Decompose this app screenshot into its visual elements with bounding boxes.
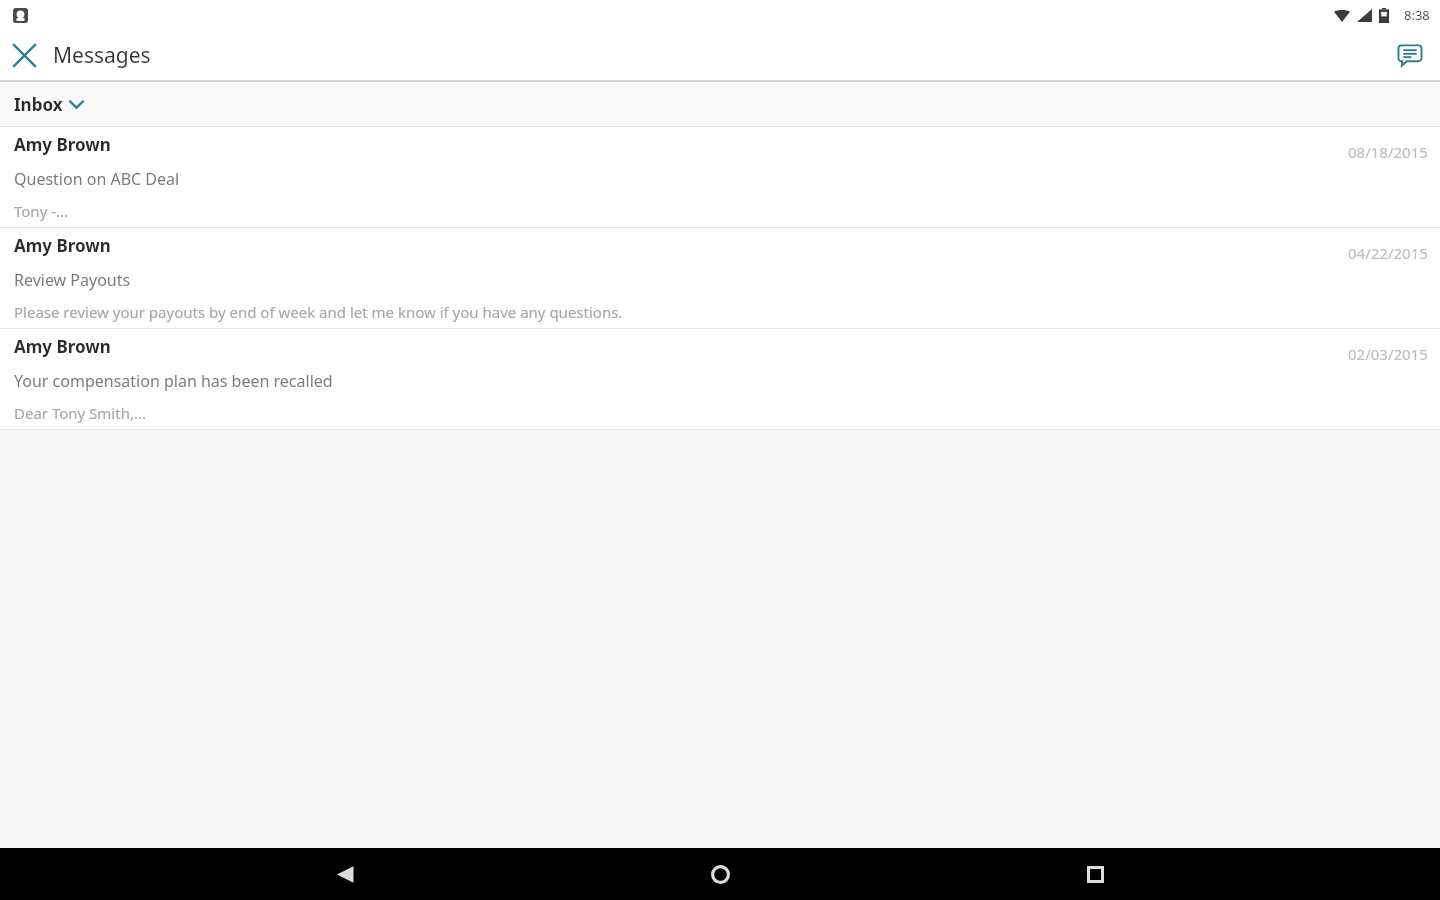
staticText: Messages [53,41,151,70]
staticText: Review Payouts [14,269,131,291]
staticText: Dear Tony Smith,... [14,403,147,423]
button[interactable]: Amy Brown [0,329,1440,429]
staticText: Question on ABC Deal [14,168,180,190]
staticText: 04/22/2015 [1348,243,1428,263]
button[interactable]: Back [315,848,375,900]
staticText: Amy Brown [14,335,111,358]
staticText: 08/18/2015 [1348,142,1428,162]
button[interactable]: Amy Brown [0,228,1440,328]
staticText: Amy Brown [14,234,111,257]
button[interactable]: Home [690,848,750,900]
staticText: 8:38 [1404,6,1430,24]
button[interactable]: Close [0,31,48,79]
button[interactable]: Inbox [0,82,1440,126]
button[interactable]: Amy Brown [0,127,1440,227]
button[interactable]: New message [1386,31,1434,79]
staticText: Your compensation plan has been recalled [14,370,333,392]
staticText: Amy Brown [14,133,111,156]
button[interactable]: Recents [1065,848,1125,900]
staticText: Inbox [14,93,63,116]
staticText: 02/03/2015 [1348,344,1428,364]
staticText: Tony -... [14,201,69,221]
staticText: Please review your payouts by end of wee… [14,302,623,322]
